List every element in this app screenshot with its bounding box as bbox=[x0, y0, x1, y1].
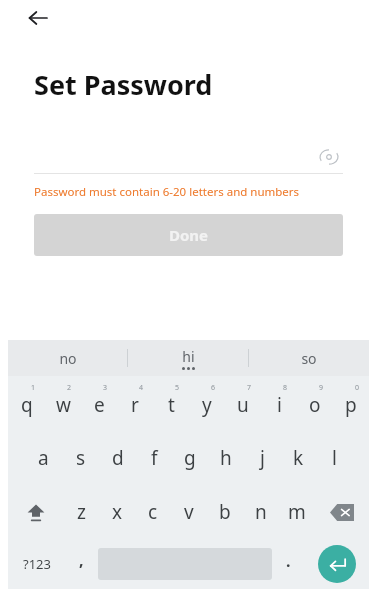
staticText: s bbox=[76, 445, 86, 471]
button[interactable]: z bbox=[63, 485, 99, 539]
staticText: e bbox=[94, 392, 105, 418]
staticText: d bbox=[112, 445, 124, 471]
staticText: a bbox=[38, 445, 49, 471]
staticText: z bbox=[77, 499, 86, 525]
button[interactable]: 6 bbox=[189, 376, 225, 431]
staticText: Password must contain 6-20 letters and n… bbox=[34, 184, 300, 200]
staticText: i bbox=[277, 392, 282, 418]
button[interactable]: 5 bbox=[153, 376, 189, 431]
button[interactable]: b bbox=[207, 485, 243, 539]
staticText: o bbox=[309, 392, 321, 418]
button[interactable]: x bbox=[99, 485, 135, 539]
button[interactable]: 4 bbox=[117, 376, 153, 431]
button[interactable]: f bbox=[136, 431, 172, 485]
staticText: r bbox=[131, 392, 139, 418]
staticText: , bbox=[79, 549, 84, 571]
staticText: Done bbox=[169, 225, 209, 245]
button[interactable]: Shift bbox=[8, 485, 63, 539]
staticText: so bbox=[301, 349, 317, 368]
staticText: m bbox=[288, 499, 306, 525]
button[interactable]: c bbox=[135, 485, 171, 539]
staticText: Set Password bbox=[34, 66, 213, 103]
staticText: x bbox=[112, 499, 123, 525]
staticText: ?123 bbox=[23, 555, 51, 573]
button[interactable]: d bbox=[99, 431, 136, 485]
button[interactable]: 1 bbox=[8, 376, 45, 431]
button[interactable]: Show password bbox=[315, 143, 343, 171]
staticText: q bbox=[21, 392, 33, 418]
button[interactable]: 8 bbox=[261, 376, 297, 431]
button[interactable]: . bbox=[272, 539, 305, 589]
button[interactable]: Back bbox=[22, 2, 54, 34]
button[interactable]: no bbox=[8, 340, 127, 376]
button[interactable]: 3 bbox=[81, 376, 117, 431]
staticText: 7 bbox=[247, 383, 252, 393]
button[interactable]: 7 bbox=[225, 376, 261, 431]
button[interactable]: Enter bbox=[305, 539, 369, 589]
staticText: l bbox=[332, 445, 337, 471]
button[interactable]: v bbox=[171, 485, 207, 539]
button[interactable]: s bbox=[62, 431, 99, 485]
button[interactable]: l bbox=[316, 431, 352, 485]
staticText: 1 bbox=[31, 383, 36, 393]
staticText: 2 bbox=[67, 383, 72, 393]
button[interactable]: h bbox=[208, 431, 244, 485]
button[interactable]: 9 bbox=[297, 376, 333, 431]
staticText: 3 bbox=[103, 383, 108, 393]
button[interactable]: j bbox=[244, 431, 280, 485]
staticText: . bbox=[286, 550, 291, 572]
button[interactable]: m bbox=[279, 485, 315, 539]
button[interactable]: , bbox=[65, 539, 98, 589]
button[interactable]: Done bbox=[34, 214, 343, 256]
staticText: 4 bbox=[139, 383, 144, 393]
staticText: t bbox=[168, 392, 175, 418]
staticText: f bbox=[151, 445, 158, 471]
staticText: n bbox=[255, 499, 267, 525]
button[interactable]: n bbox=[243, 485, 279, 539]
staticText: b bbox=[219, 499, 231, 525]
button[interactable]: so bbox=[249, 340, 369, 376]
staticText: 0 bbox=[355, 383, 360, 393]
staticText: y bbox=[202, 392, 212, 418]
button[interactable]: g bbox=[172, 431, 208, 485]
button[interactable]: 2 bbox=[45, 376, 81, 431]
staticText: 9 bbox=[319, 383, 324, 393]
staticText: p bbox=[345, 392, 357, 418]
staticText: w bbox=[56, 392, 71, 418]
button[interactable]: 0 bbox=[333, 376, 369, 431]
staticText: no bbox=[59, 349, 77, 368]
staticText: h bbox=[220, 445, 232, 471]
staticText: 8 bbox=[283, 383, 288, 393]
button[interactable]: a bbox=[25, 431, 62, 485]
button[interactable]: hi bbox=[128, 340, 248, 376]
staticText: u bbox=[237, 392, 249, 418]
staticText: c bbox=[148, 499, 158, 525]
staticText: hi bbox=[182, 347, 195, 366]
staticText: 6 bbox=[211, 383, 216, 393]
staticText: j bbox=[260, 445, 265, 471]
staticText: k bbox=[293, 445, 304, 471]
button[interactable]: k bbox=[280, 431, 316, 485]
button[interactable]: Backspace bbox=[315, 485, 369, 539]
staticText: v bbox=[184, 499, 194, 525]
staticText: g bbox=[184, 445, 196, 471]
button[interactable]: ?123 bbox=[8, 539, 65, 589]
staticText: 5 bbox=[175, 383, 180, 393]
